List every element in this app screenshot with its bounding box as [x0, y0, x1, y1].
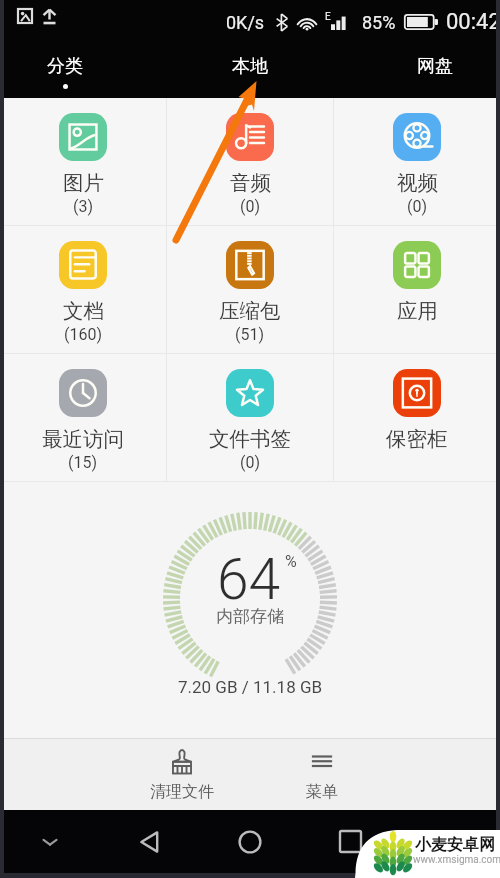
staticText: (160) [64, 325, 103, 344]
staticText: (51) [235, 325, 265, 344]
staticText: 小麦安卓网 [415, 835, 495, 855]
staticText: 00:42 [446, 9, 500, 35]
staticText: 文档 [63, 298, 104, 324]
button[interactable]: Hide [0, 810, 100, 873]
staticText: 64 [217, 546, 281, 613]
button[interactable]: 图片 [0, 98, 166, 225]
staticText: 保密柜 [386, 426, 448, 452]
staticText: 内部存储 [216, 606, 284, 627]
staticText: 压缩包 [219, 298, 281, 324]
staticText: 0K/s [226, 12, 265, 33]
staticText: 菜单 [306, 782, 338, 802]
button[interactable]: 压缩包 [167, 226, 333, 353]
staticText: (3) [73, 197, 94, 216]
staticText: 清理文件 [150, 782, 214, 802]
staticText: % [285, 552, 297, 571]
staticText: (0) [240, 197, 261, 216]
staticText: (0) [407, 197, 428, 216]
button[interactable]: 视频 [334, 98, 500, 225]
button[interactable]: 菜单 [294, 739, 350, 802]
staticText: 7.20 GB / 11.18 GB [178, 677, 323, 697]
staticText: (15) [68, 453, 98, 472]
button[interactable]: 最近访问 [0, 354, 166, 481]
button[interactable]: 保密柜 [334, 354, 500, 481]
staticText: 85% [362, 12, 396, 33]
staticText: 本地 [232, 55, 268, 78]
button[interactable]: 文件书签 [167, 354, 333, 481]
button[interactable]: 文档 [0, 226, 166, 353]
button[interactable]: 网盘 [381, 44, 489, 98]
button[interactable]: 音频 [167, 98, 333, 225]
staticText: 网盘 [417, 55, 453, 78]
button[interactable]: 分类 [11, 44, 119, 98]
button[interactable]: 本地 [196, 44, 304, 98]
staticText: 图片 [63, 170, 104, 196]
staticText: 文件书签 [209, 426, 291, 452]
staticText: 视频 [397, 170, 438, 196]
staticText: E [325, 11, 331, 23]
staticText: 最近访问 [42, 426, 124, 452]
button[interactable]: Recents [300, 810, 400, 873]
button[interactable]: 清理文件 [138, 739, 226, 802]
staticText: 应用 [397, 298, 438, 324]
button[interactable]: Home [200, 810, 300, 873]
staticText: 音频 [230, 170, 271, 196]
staticText: (0) [240, 453, 261, 472]
button[interactable]: 应用 [334, 226, 500, 353]
staticText: 分类 [47, 55, 83, 78]
staticText: www.xmsigma.com [413, 854, 500, 866]
button[interactable]: Back [100, 810, 200, 873]
